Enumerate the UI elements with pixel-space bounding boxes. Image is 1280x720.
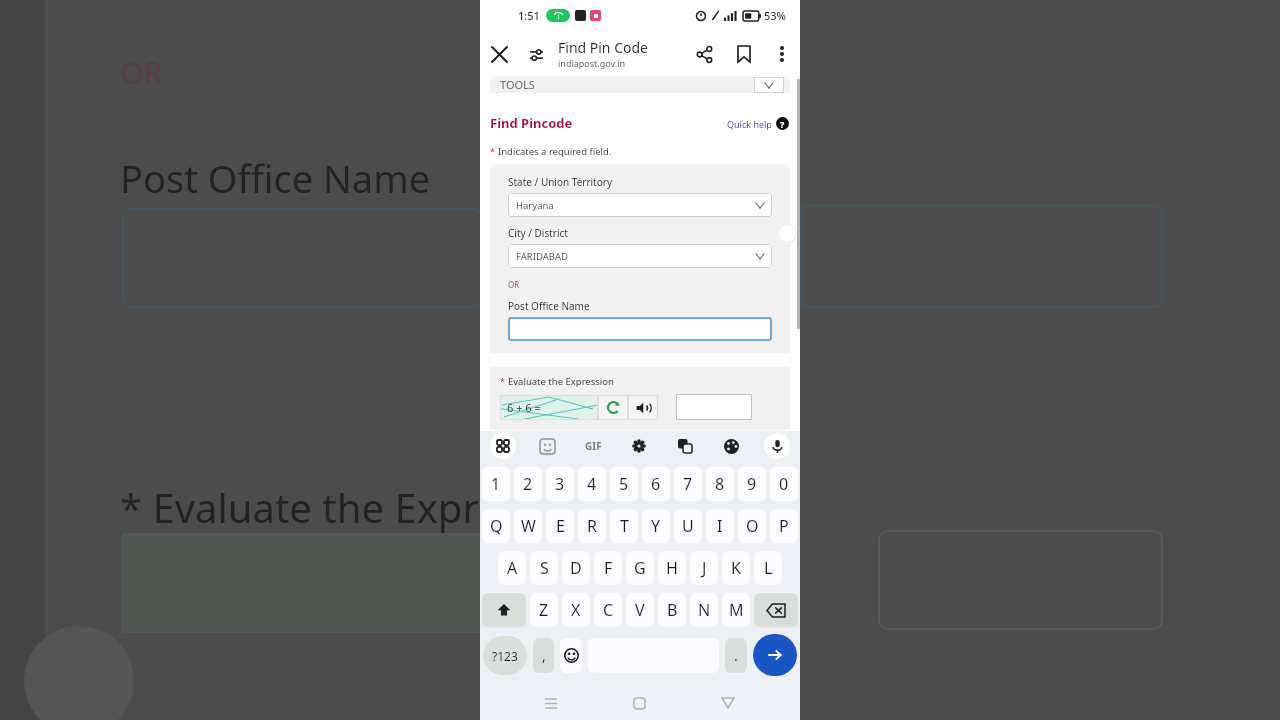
staticText: Haryana (516, 199, 554, 212)
button[interactable]: Recents (534, 686, 568, 720)
button[interactable]: B (658, 593, 686, 627)
button[interactable]: theme (708, 431, 754, 461)
staticText: J (702, 557, 707, 579)
staticText: GIF (585, 439, 602, 453)
button[interactable]: 0 (770, 467, 798, 501)
button[interactable]: F (594, 551, 622, 585)
button[interactable]: T (610, 509, 638, 543)
button[interactable]: Backspace (754, 593, 798, 627)
button[interactable]: settings (616, 431, 662, 461)
button[interactable]: L (754, 551, 782, 585)
button[interactable]: C (594, 593, 622, 627)
staticText: 6 (651, 473, 661, 495)
button[interactable]: K (722, 551, 750, 585)
button[interactable]: Quick help (727, 117, 789, 130)
button[interactable]: Play captcha audio (628, 395, 658, 420)
button[interactable]: G (626, 551, 654, 585)
button[interactable]: , (533, 638, 554, 673)
staticText: W (521, 515, 536, 537)
button[interactable]: I (706, 509, 734, 543)
staticText: A (507, 557, 518, 579)
button[interactable]: Y (642, 509, 670, 543)
button[interactable]: More options (764, 36, 800, 72)
staticText: Indicates a required field. (498, 145, 612, 158)
staticText: ?123 (492, 648, 518, 664)
button[interactable]: FARIDABAD (508, 244, 772, 268)
button[interactable]: 6 (642, 467, 670, 501)
staticText: U (682, 515, 694, 537)
button[interactable]: Share (684, 34, 724, 74)
button[interactable]: 5 (610, 467, 638, 501)
button[interactable]: Bookmark (724, 34, 764, 74)
button[interactable]: mic (754, 431, 800, 461)
staticText: , (542, 646, 546, 665)
staticText: L (764, 557, 773, 579)
staticText: FARIDABAD (516, 250, 568, 263)
button[interactable]: Apps (490, 433, 516, 459)
button[interactable]: U (674, 509, 702, 543)
button[interactable]: Q (482, 509, 510, 543)
staticText: 8 (715, 473, 725, 495)
staticText: Z (539, 599, 549, 621)
button[interactable]: R (578, 509, 606, 543)
button[interactable]: 8 (706, 467, 734, 501)
staticText: M (729, 599, 744, 621)
button[interactable]: D (562, 551, 590, 585)
staticText: G (634, 557, 646, 579)
button[interactable]: A (498, 551, 526, 585)
button[interactable] (508, 317, 772, 341)
staticText: K (731, 557, 741, 579)
button[interactable]: W (514, 509, 542, 543)
button[interactable]: Shift (482, 593, 526, 627)
button[interactable]: S (530, 551, 558, 585)
button[interactable]: 2 (514, 467, 542, 501)
button[interactable]: Emoji (560, 638, 582, 673)
staticText: V (635, 599, 645, 621)
button[interactable]: X (562, 593, 590, 627)
button[interactable]: M (722, 593, 750, 627)
button[interactable]: V (626, 593, 654, 627)
staticText: 6 + 6 = (507, 400, 541, 415)
staticText: * Evaluate the Expr (120, 480, 479, 534)
button[interactable]: 9 (738, 467, 766, 501)
button[interactable]: Z (530, 593, 558, 627)
staticText: 0 (779, 473, 789, 495)
button[interactable]: ?123 (483, 636, 527, 675)
button[interactable]: translate (662, 431, 708, 461)
button[interactable]: H (658, 551, 686, 585)
button[interactable]: gif (570, 431, 616, 461)
button[interactable] (676, 394, 752, 420)
button[interactable]: Back (711, 686, 745, 720)
button[interactable]: Refresh captcha (598, 395, 628, 420)
button[interactable]: Handle (778, 224, 797, 243)
staticText: 53% (764, 8, 786, 23)
staticText: OR (508, 279, 520, 290)
staticText: Q (490, 515, 503, 537)
button[interactable]: N (690, 593, 718, 627)
button[interactable]: 3 (546, 467, 574, 501)
button[interactable]: Page info (518, 36, 554, 72)
button[interactable]: 4 (578, 467, 606, 501)
staticText: ? (780, 118, 785, 130)
staticText: C (603, 599, 614, 621)
staticText: H (666, 557, 678, 579)
staticText: I (717, 515, 723, 537)
button[interactable]: Enter (753, 634, 797, 676)
staticText: T (620, 515, 629, 537)
button[interactable]: O (738, 509, 766, 543)
button[interactable]: Haryana (508, 193, 772, 217)
button[interactable]: 7 (674, 467, 702, 501)
button[interactable]: Home (622, 686, 656, 720)
button[interactable]: sticker (525, 431, 570, 461)
button[interactable]: . (725, 638, 747, 673)
button[interactable]: Close (480, 35, 518, 73)
staticText: F (604, 557, 613, 579)
button[interactable]: 1 (482, 467, 510, 501)
button[interactable]: P (770, 509, 798, 543)
staticText: 2 (523, 473, 533, 495)
button[interactable]: J (690, 551, 718, 585)
staticText: indiapost.gov.in (558, 57, 626, 69)
staticText: Post Office Name (508, 299, 590, 313)
button[interactable]: E (546, 509, 574, 543)
